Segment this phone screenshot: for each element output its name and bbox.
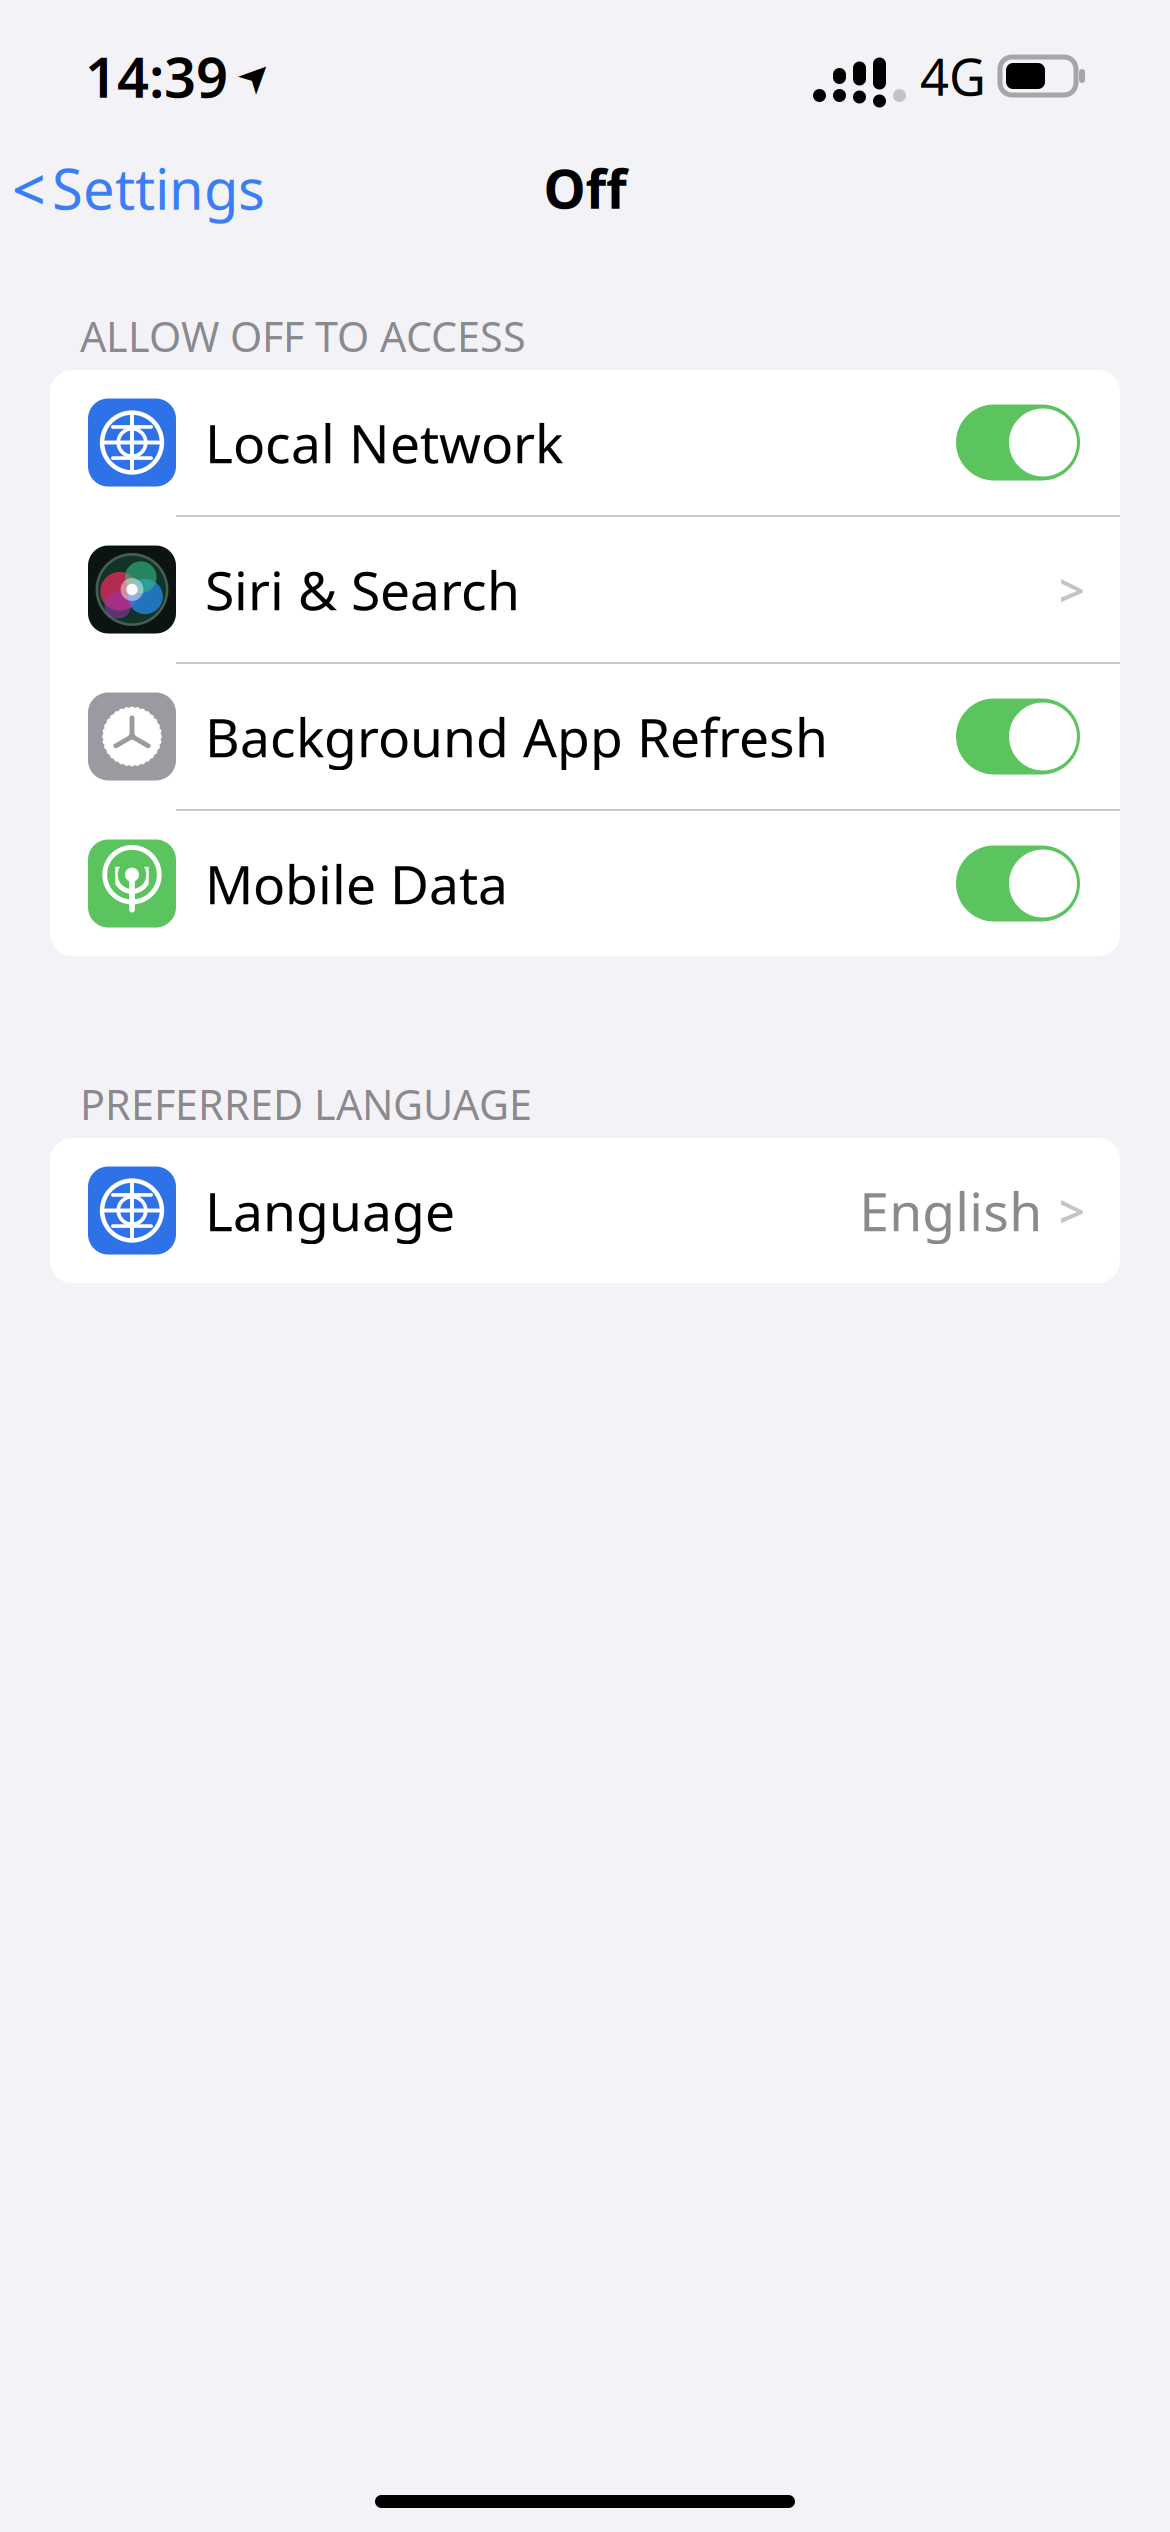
staticText: ALLOW OFF TO ACCESS: [80, 309, 526, 363]
staticText: Off: [543, 153, 626, 223]
button[interactable]: <: [0, 141, 281, 235]
staticText: <: [12, 149, 46, 227]
button[interactable]: Siri & Search: [50, 517, 1120, 662]
staticText: Language: [205, 1175, 455, 1246]
button[interactable]: Mobile Data: [50, 811, 1120, 956]
button[interactable]: Background App Refresh: [50, 664, 1120, 809]
staticText: Background App Refresh: [205, 701, 828, 772]
staticText: English: [859, 1175, 1042, 1246]
staticText: Settings: [52, 151, 265, 225]
staticText: Local Network: [205, 407, 563, 478]
button[interactable]: Local Network: [50, 370, 1120, 515]
staticText: >: [1059, 559, 1085, 620]
button[interactable]: Language: [50, 1138, 1120, 1283]
staticText: 14:39: [85, 39, 228, 113]
staticText: Siri & Search: [205, 554, 520, 625]
staticText: 4G: [920, 42, 986, 110]
staticText: ➤: [238, 53, 272, 99]
staticText: >: [1059, 1180, 1085, 1241]
staticText: PREFERRED LANGUAGE: [80, 1077, 532, 1131]
staticText: Mobile Data: [205, 848, 508, 919]
